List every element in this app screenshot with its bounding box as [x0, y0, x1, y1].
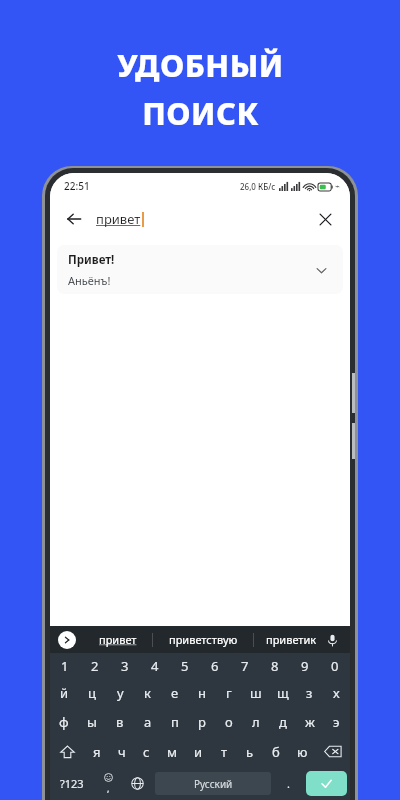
button[interactable]: . — [274, 767, 303, 800]
staticText: р — [198, 713, 206, 731]
staticText: ш — [250, 684, 262, 702]
button[interactable]: приветик — [254, 626, 328, 653]
staticText: й — [60, 684, 69, 702]
button[interactable]: ж — [296, 707, 323, 736]
staticText: ф — [59, 713, 69, 731]
staticText: 7 — [241, 657, 249, 675]
staticText: . — [287, 776, 290, 791]
button[interactable]: д — [269, 707, 296, 736]
button[interactable]: 1 — [50, 653, 80, 678]
staticText: з — [306, 684, 313, 702]
button[interactable]: а — [134, 707, 161, 736]
button[interactable]: 6 — [200, 653, 230, 678]
staticText: я — [93, 743, 101, 761]
button[interactable]: р — [188, 707, 215, 736]
staticText: 1 — [61, 657, 69, 675]
button[interactable]: 8 — [260, 653, 290, 678]
staticText: н — [198, 684, 206, 702]
button[interactable]: щ — [269, 678, 296, 707]
button[interactable]: 9 — [290, 653, 320, 678]
staticText: 9 — [301, 657, 309, 675]
button[interactable]: и — [185, 736, 211, 767]
staticText: л — [252, 713, 260, 731]
staticText: ь — [246, 743, 254, 761]
staticText: ПОИСК — [142, 92, 259, 134]
staticText: 3 — [121, 657, 129, 675]
staticText: 22:51 — [64, 179, 90, 193]
button[interactable]: ю — [289, 736, 315, 767]
button[interactable]: ч — [109, 736, 134, 767]
button[interactable]: Назад — [58, 203, 90, 235]
staticText: привет — [99, 632, 137, 647]
button[interactable]: ы — [78, 707, 106, 736]
button[interactable]: Сменить язык — [123, 767, 152, 800]
button[interactable]: 0 — [320, 653, 350, 678]
button[interactable]: Готово — [306, 771, 347, 796]
staticText: и — [194, 743, 203, 761]
staticText: в — [116, 713, 124, 731]
button[interactable]: м — [159, 736, 185, 767]
button[interactable]: я — [84, 736, 109, 767]
button[interactable]: Ещё — [58, 631, 76, 649]
button[interactable]: ц — [78, 678, 106, 707]
button[interactable]: б — [263, 736, 289, 767]
button[interactable]: з — [296, 678, 323, 707]
staticText: у — [117, 684, 124, 702]
button[interactable]: Удалить — [315, 736, 350, 767]
button[interactable]: Shift — [50, 736, 84, 767]
button[interactable]: е — [161, 678, 188, 707]
button[interactable]: Русский — [155, 772, 271, 795]
staticText: е — [171, 684, 179, 702]
button[interactable]: 2 — [80, 653, 110, 678]
staticText: ц — [88, 684, 96, 702]
button[interactable]: 4 — [140, 653, 170, 678]
button[interactable]: т — [211, 736, 237, 767]
button[interactable]: л — [242, 707, 269, 736]
staticText: о — [225, 713, 233, 731]
button[interactable]: Эмодзи — [94, 767, 123, 800]
button[interactable]: к — [134, 678, 161, 707]
button[interactable]: ь — [237, 736, 263, 767]
staticText: ?123 — [60, 776, 84, 791]
staticText: приветствую — [169, 632, 238, 647]
button[interactable]: Очистить — [310, 204, 340, 234]
button[interactable]: ф — [50, 707, 78, 736]
button[interactable]: п — [161, 707, 188, 736]
button[interactable]: й — [50, 678, 78, 707]
button[interactable]: э — [323, 707, 350, 736]
staticText: б — [272, 743, 280, 761]
staticText: щ — [277, 684, 289, 702]
button[interactable]: х — [323, 678, 350, 707]
button[interactable]: ш — [242, 678, 269, 707]
staticText: 6 — [211, 657, 219, 675]
staticText: 26,0 КБ/c — [240, 181, 276, 192]
button[interactable]: ?123 — [50, 767, 94, 800]
button[interactable]: о — [215, 707, 242, 736]
button[interactable]: 3 — [110, 653, 140, 678]
staticText: э — [333, 713, 340, 731]
staticText: ю — [297, 743, 308, 761]
button[interactable]: г — [215, 678, 242, 707]
button[interactable]: 7 — [230, 653, 260, 678]
button[interactable]: Привет! — [57, 245, 343, 294]
staticText: Русский — [194, 777, 233, 791]
staticText: 2 — [91, 657, 99, 675]
staticText: 5 — [181, 657, 189, 675]
button[interactable]: привет — [84, 626, 152, 653]
staticText: с — [143, 743, 150, 761]
staticText: привет — [96, 210, 141, 228]
button[interactable]: приветствую — [153, 626, 253, 653]
staticText: ж — [305, 713, 315, 731]
staticText: Привет! — [68, 252, 115, 268]
button[interactable]: с — [134, 736, 159, 767]
button[interactable]: 5 — [170, 653, 200, 678]
button[interactable]: у — [106, 678, 134, 707]
staticText: д — [279, 713, 287, 731]
staticText: ч — [118, 743, 126, 761]
button[interactable]: Голосовой ввод — [322, 630, 342, 650]
button[interactable]: н — [188, 678, 215, 707]
staticText: т — [221, 743, 228, 761]
button[interactable]: в — [106, 707, 134, 736]
staticText: к — [144, 684, 151, 702]
staticText: ы — [87, 713, 97, 731]
